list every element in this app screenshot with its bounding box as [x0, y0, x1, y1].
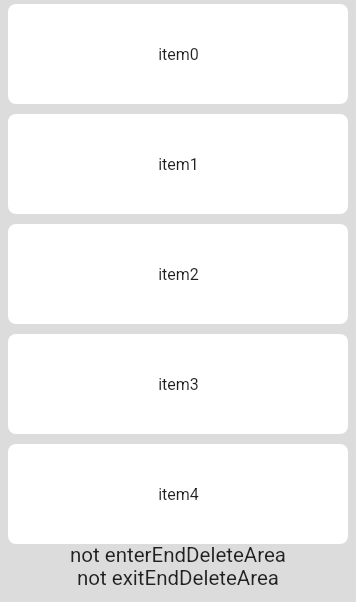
- staticText: item2: [158, 265, 199, 284]
- staticText: item0: [158, 45, 199, 64]
- staticText: item4: [158, 485, 199, 504]
- button[interactable]: item1: [8, 114, 348, 214]
- staticText: not exitEndDeleteArea: [77, 566, 279, 590]
- staticText: not enterEndDeleteArea: [70, 543, 286, 567]
- button[interactable]: item3: [8, 334, 348, 434]
- button[interactable]: item0: [8, 4, 348, 104]
- button[interactable]: item4: [8, 444, 348, 544]
- staticText: item3: [158, 375, 199, 394]
- button[interactable]: item2: [8, 224, 348, 324]
- staticText: item1: [158, 155, 199, 174]
